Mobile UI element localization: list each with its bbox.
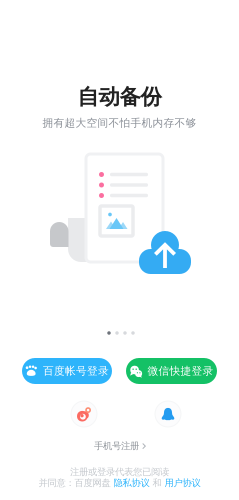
staticText: 拥有超大空间不怕手机内存不够	[42, 116, 196, 129]
staticText: 并同意：百度网盘	[38, 477, 113, 489]
staticText: 自动备份	[77, 84, 161, 110]
staticText: 和	[149, 477, 164, 489]
staticText: 隐私协议	[113, 477, 149, 489]
button[interactable]: 隐私协议	[113, 477, 149, 489]
staticText: 百度帐号登录	[43, 364, 109, 377]
button[interactable]: Sign in with QQ	[154, 400, 182, 428]
button[interactable]: 用户协议	[164, 477, 200, 489]
button[interactable]: 手机号注册	[80, 439, 160, 453]
button[interactable]: 微信快捷登录	[126, 358, 217, 384]
staticText: 注册或登录代表您已阅读	[70, 466, 169, 478]
staticText: 用户协议	[164, 477, 200, 489]
button[interactable]: 百度帐号登录	[22, 358, 112, 384]
staticText: 手机号注册	[94, 440, 139, 452]
button[interactable]: Sign in with Weibo	[70, 400, 98, 428]
staticText: 微信快捷登录	[147, 364, 213, 377]
